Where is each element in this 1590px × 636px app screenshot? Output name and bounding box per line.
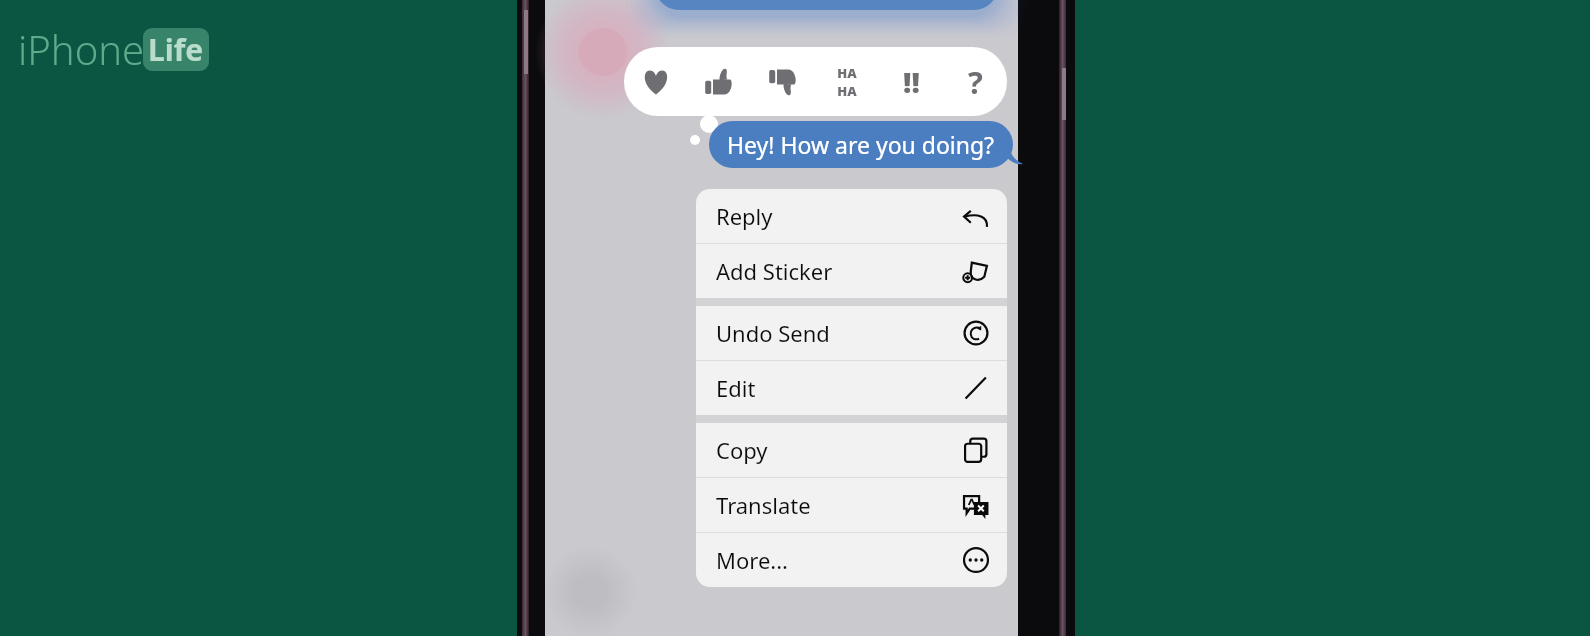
button[interactable]: Edit bbox=[696, 361, 1007, 415]
button[interactable]: Undo Send bbox=[696, 306, 1007, 360]
button[interactable]: Reply bbox=[696, 189, 1007, 243]
staticText: More... bbox=[716, 545, 963, 575]
button[interactable]: Haha bbox=[815, 47, 879, 116]
staticText: Edit bbox=[716, 373, 963, 403]
staticText: Add Sticker bbox=[716, 256, 963, 286]
staticText: Copy bbox=[716, 435, 963, 465]
staticText: Translate bbox=[716, 490, 963, 520]
staticText: iPhone bbox=[18, 22, 145, 76]
staticText: ? bbox=[968, 61, 983, 103]
button[interactable]: Love bbox=[624, 47, 687, 116]
button[interactable]: Add Sticker bbox=[696, 244, 1007, 298]
button[interactable]: Dislike bbox=[751, 47, 815, 116]
button[interactable]: Emphasize bbox=[879, 47, 943, 116]
button[interactable]: Like bbox=[687, 47, 751, 116]
staticText: Life bbox=[148, 29, 204, 70]
staticText: Undo Send bbox=[716, 318, 963, 348]
button[interactable]: More... bbox=[696, 533, 1007, 587]
staticText: Reply bbox=[716, 201, 963, 231]
button[interactable]: Copy bbox=[696, 423, 1007, 477]
staticText: HA bbox=[837, 64, 857, 82]
staticText: HA bbox=[837, 82, 857, 100]
staticText: !! bbox=[903, 62, 920, 101]
button[interactable]: Question bbox=[943, 47, 1007, 116]
staticText: Hey! How are you doing? bbox=[727, 129, 995, 160]
button[interactable]: Hey! How are you doing? bbox=[709, 121, 1013, 168]
button[interactable]: Translate bbox=[696, 478, 1007, 532]
